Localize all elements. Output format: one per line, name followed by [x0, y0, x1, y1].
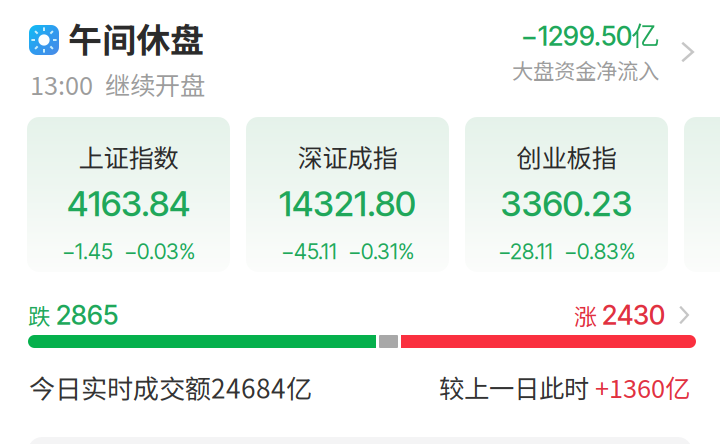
staticText: 午间休盘 [68, 13, 204, 63]
staticText: 较上一日此时 [439, 369, 595, 405]
staticText: −45.11 [281, 239, 337, 264]
button[interactable]: 科创50 [684, 117, 720, 272]
staticText: 创业板指 [516, 138, 616, 175]
button[interactable]: 创业板指 [465, 117, 668, 272]
staticText: −0.31% [348, 239, 414, 264]
staticText: 大盘资金净流入 [512, 54, 659, 85]
staticText: 上证指数 [78, 138, 178, 175]
staticText: 3360.23 [500, 183, 632, 225]
staticText: 今日实时成交额24684亿 [29, 368, 312, 406]
staticText: 跌 [28, 299, 51, 331]
staticText: +1360亿 [595, 369, 690, 405]
staticText: 13:00 继续开盘 [30, 66, 205, 102]
staticText: −0.03% [124, 239, 195, 264]
staticText: 2865 [56, 299, 118, 331]
button[interactable]: 深证成指 [246, 117, 449, 272]
staticText: −0.83% [564, 239, 635, 264]
staticText: 4163.84 [67, 183, 190, 225]
staticText: −28.11 [498, 239, 553, 264]
staticText: −1.45 [62, 239, 113, 264]
staticText: 涨 [574, 299, 597, 331]
staticText: 深证成指 [297, 138, 397, 175]
button[interactable]: 跌 [28, 302, 689, 328]
staticText: 14321.80 [279, 183, 416, 225]
staticText: −1299.50亿 [521, 19, 659, 52]
staticText: 2430 [602, 299, 665, 331]
button[interactable]: −1299.50亿 [444, 23, 694, 81]
button[interactable]: 上证指数 [27, 117, 230, 272]
